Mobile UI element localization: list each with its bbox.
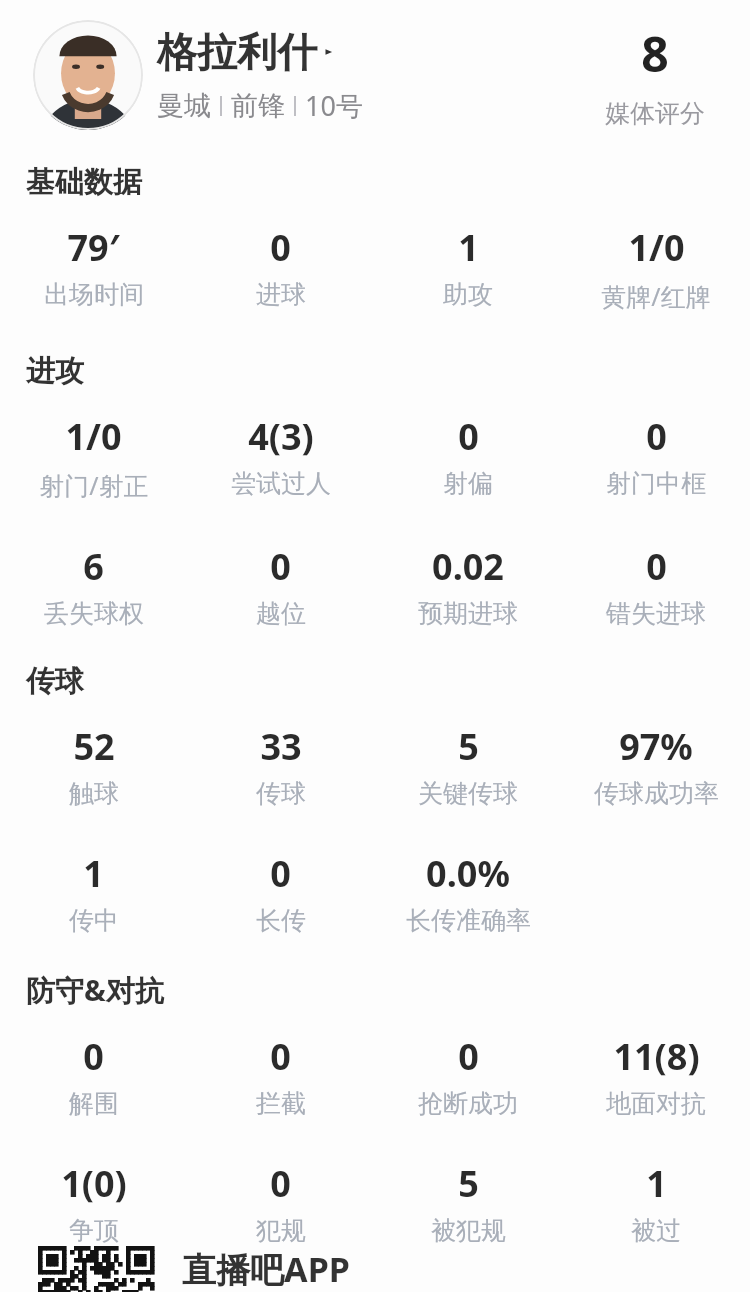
staticText: 传球 — [256, 778, 306, 809]
staticText: 1(0) — [61, 1159, 127, 1208]
button[interactable]: 79′ — [0, 223, 187, 310]
staticText: 被过 — [631, 1215, 681, 1246]
button[interactable]: 1 — [0, 849, 187, 936]
staticText: 地面对抗 — [606, 1088, 706, 1119]
staticText: 预期进球 — [418, 598, 518, 629]
button[interactable]: 0.02 — [374, 542, 562, 629]
staticText: 1/0 — [628, 223, 685, 272]
staticText: 5 — [458, 722, 479, 771]
staticText: 争顶 — [69, 1215, 119, 1246]
staticText: 4(3) — [248, 412, 314, 461]
staticText: 0 — [646, 542, 667, 591]
staticText: 错失进球 — [606, 598, 706, 629]
staticText: 进攻 — [26, 353, 84, 390]
other: Player photo — [33, 20, 143, 130]
staticText: 1 — [83, 849, 104, 898]
button[interactable]: QR code — [0, 1246, 750, 1292]
staticText: 媒体评分 — [605, 98, 705, 129]
button[interactable]: 52 — [0, 722, 187, 809]
staticText: 助攻 — [443, 279, 493, 310]
button[interactable]: 33 — [187, 722, 374, 809]
button[interactable]: 0 — [374, 1032, 562, 1119]
button[interactable]: 1 — [374, 223, 562, 310]
staticText: 格拉利什 — [157, 27, 317, 77]
staticText: 进球 — [256, 279, 306, 310]
staticText: 0 — [458, 412, 479, 461]
button[interactable]: 4(3) — [187, 412, 374, 499]
staticText: 0.02 — [432, 542, 504, 591]
staticText: 传球成功率 — [594, 778, 719, 809]
button[interactable]: 0 — [187, 223, 374, 310]
staticText: 1/0 — [65, 412, 122, 461]
staticText: 长传准确率 — [406, 905, 531, 936]
staticText: 0.0% — [426, 849, 510, 898]
button[interactable]: 0 — [187, 849, 374, 936]
button[interactable]: 0 — [0, 1032, 187, 1119]
staticText: 解围 — [69, 1088, 119, 1119]
staticText: 射偏 — [443, 468, 493, 499]
staticText: 射门/射正 — [39, 468, 149, 502]
staticText: 0 — [458, 1032, 479, 1081]
staticText: 0 — [83, 1032, 104, 1081]
staticText: 10号 — [305, 87, 363, 124]
staticText: 0 — [270, 542, 291, 591]
staticText: 8 — [641, 21, 669, 86]
button[interactable]: 0 — [187, 542, 374, 629]
staticText: 1 — [458, 223, 479, 272]
staticText: 防守&对抗 — [26, 970, 164, 1010]
staticText: 关键传球 — [418, 778, 518, 809]
button[interactable]: 1/0 — [0, 412, 187, 502]
button[interactable]: 1 — [562, 1159, 750, 1246]
staticText: 传球 — [26, 663, 84, 700]
staticText: 6 — [83, 542, 104, 591]
staticText: 曼城 — [157, 89, 211, 123]
staticText: 拦截 — [256, 1088, 306, 1119]
button[interactable]: 进攻 — [26, 353, 750, 390]
staticText: 出场时间 — [44, 279, 144, 310]
button[interactable]: Player photo — [0, 0, 750, 150]
staticText: 52 — [73, 722, 115, 771]
staticText: 97% — [619, 722, 693, 771]
button[interactable]: 5 — [374, 722, 562, 809]
button[interactable]: 0 — [187, 1032, 374, 1119]
staticText: 越位 — [256, 598, 306, 629]
button[interactable]: 0 — [562, 542, 750, 629]
button[interactable]: 5 — [374, 1159, 562, 1246]
staticText: 33 — [260, 722, 302, 771]
staticText: 传中 — [69, 905, 119, 936]
staticText: 被犯规 — [431, 1215, 506, 1246]
staticText: 长传 — [256, 905, 306, 936]
other: QR code — [38, 1246, 154, 1292]
button[interactable]: 传球 — [26, 663, 750, 700]
staticText: 犯规 — [256, 1215, 306, 1246]
button[interactable]: 97% — [562, 722, 750, 809]
staticText: 基础数据 — [26, 164, 142, 201]
button[interactable]: 1/0 — [562, 223, 750, 313]
staticText: 0 — [270, 849, 291, 898]
button[interactable]: 11(8) — [562, 1032, 750, 1119]
button[interactable]: 防守&对抗 — [26, 970, 750, 1010]
staticText: 0 — [646, 412, 667, 461]
staticText: 5 — [458, 1159, 479, 1208]
button[interactable]: 1(0) — [0, 1159, 187, 1246]
button[interactable]: 8 — [560, 21, 750, 129]
staticText: 1 — [646, 1159, 667, 1208]
staticText: 抢断成功 — [418, 1088, 518, 1119]
staticText: 直播吧APP — [182, 1246, 350, 1292]
button[interactable]: 6 — [0, 542, 187, 629]
staticText: 丢失球权 — [44, 598, 144, 629]
staticText: 触球 — [69, 778, 119, 809]
button[interactable]: 0 — [374, 412, 562, 499]
staticText: 尝试过人 — [231, 468, 331, 499]
staticText: 11(8) — [613, 1032, 700, 1081]
button[interactable]: 0 — [562, 412, 750, 499]
button[interactable]: 0.0% — [374, 849, 562, 936]
staticText: 前锋 — [231, 89, 285, 123]
staticText: 0 — [270, 223, 291, 272]
button[interactable]: 0 — [187, 1159, 374, 1246]
staticText: 79′ — [67, 223, 120, 272]
staticText: 射门中框 — [606, 468, 706, 499]
button[interactable]: 基础数据 — [26, 164, 750, 201]
staticText: 黄牌/红牌 — [601, 279, 711, 313]
